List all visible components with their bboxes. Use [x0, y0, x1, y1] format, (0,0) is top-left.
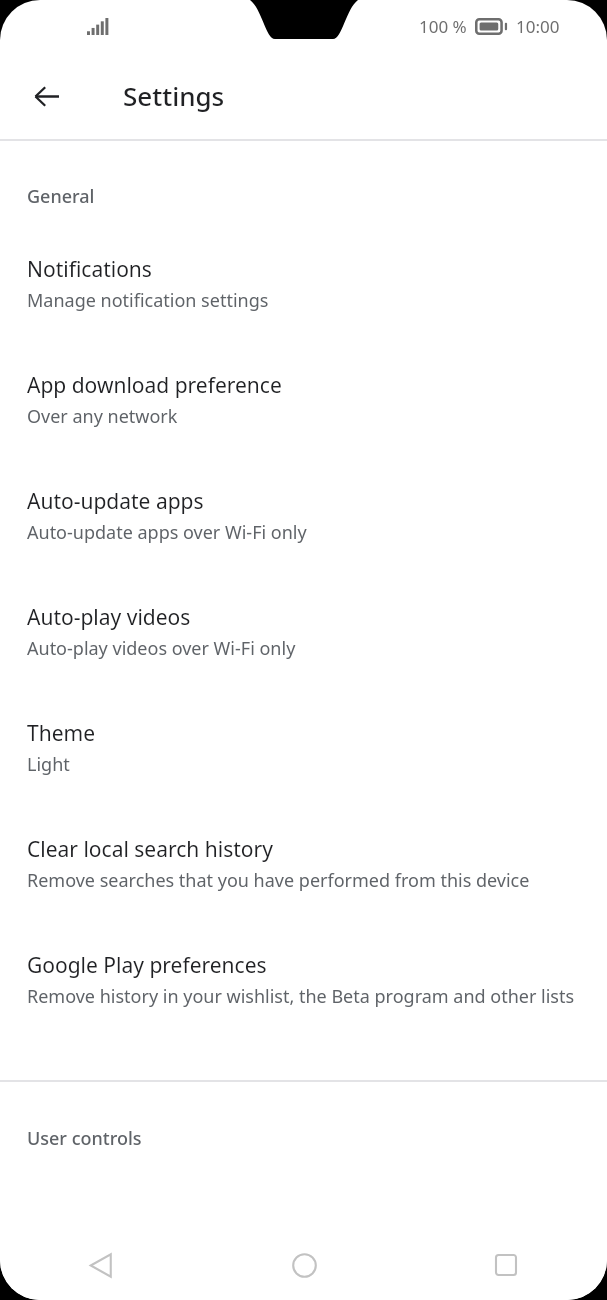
button[interactable]: Home: [203, 1230, 405, 1300]
staticText: Manage notification settings: [27, 288, 269, 313]
button[interactable]: General: [0, 184, 607, 209]
staticText: Remove history in your wishlist, the Bet…: [27, 984, 575, 1009]
staticText: Auto-update apps over Wi-Fi only: [27, 520, 307, 545]
button[interactable]: Clear local search history: [0, 835, 607, 951]
staticText: General: [27, 184, 95, 209]
button[interactable]: Back: [0, 1230, 203, 1300]
staticText: Clear local search history: [27, 835, 273, 864]
staticText: 100 %: [419, 15, 467, 38]
button[interactable]: Auto-update apps: [0, 487, 607, 603]
staticText: Auto-update apps: [27, 487, 204, 516]
button[interactable]: Google Play preferences: [0, 951, 607, 1067]
button[interactable]: Back: [19, 68, 75, 124]
staticText: Light: [27, 752, 70, 777]
button[interactable]: Auto-play videos: [0, 603, 607, 719]
button[interactable]: App download preference: [0, 371, 607, 487]
staticText: Over any network: [27, 404, 178, 429]
staticText: Auto-play videos: [27, 603, 191, 632]
staticText: Notifications: [27, 255, 152, 284]
staticText: 10:00: [516, 15, 560, 38]
staticText: Auto-play videos over Wi-Fi only: [27, 636, 296, 661]
button[interactable]: Theme: [0, 719, 607, 835]
button[interactable]: Notifications: [0, 255, 607, 371]
staticText: Remove searches that you have performed …: [27, 868, 530, 893]
staticText: User controls: [27, 1126, 142, 1151]
staticText: App download preference: [27, 371, 282, 400]
button[interactable]: User controls: [0, 1126, 607, 1151]
staticText: Theme: [27, 719, 95, 748]
staticText: Google Play preferences: [27, 951, 267, 980]
staticText: Settings: [123, 78, 225, 113]
button[interactable]: Recents: [405, 1230, 607, 1300]
